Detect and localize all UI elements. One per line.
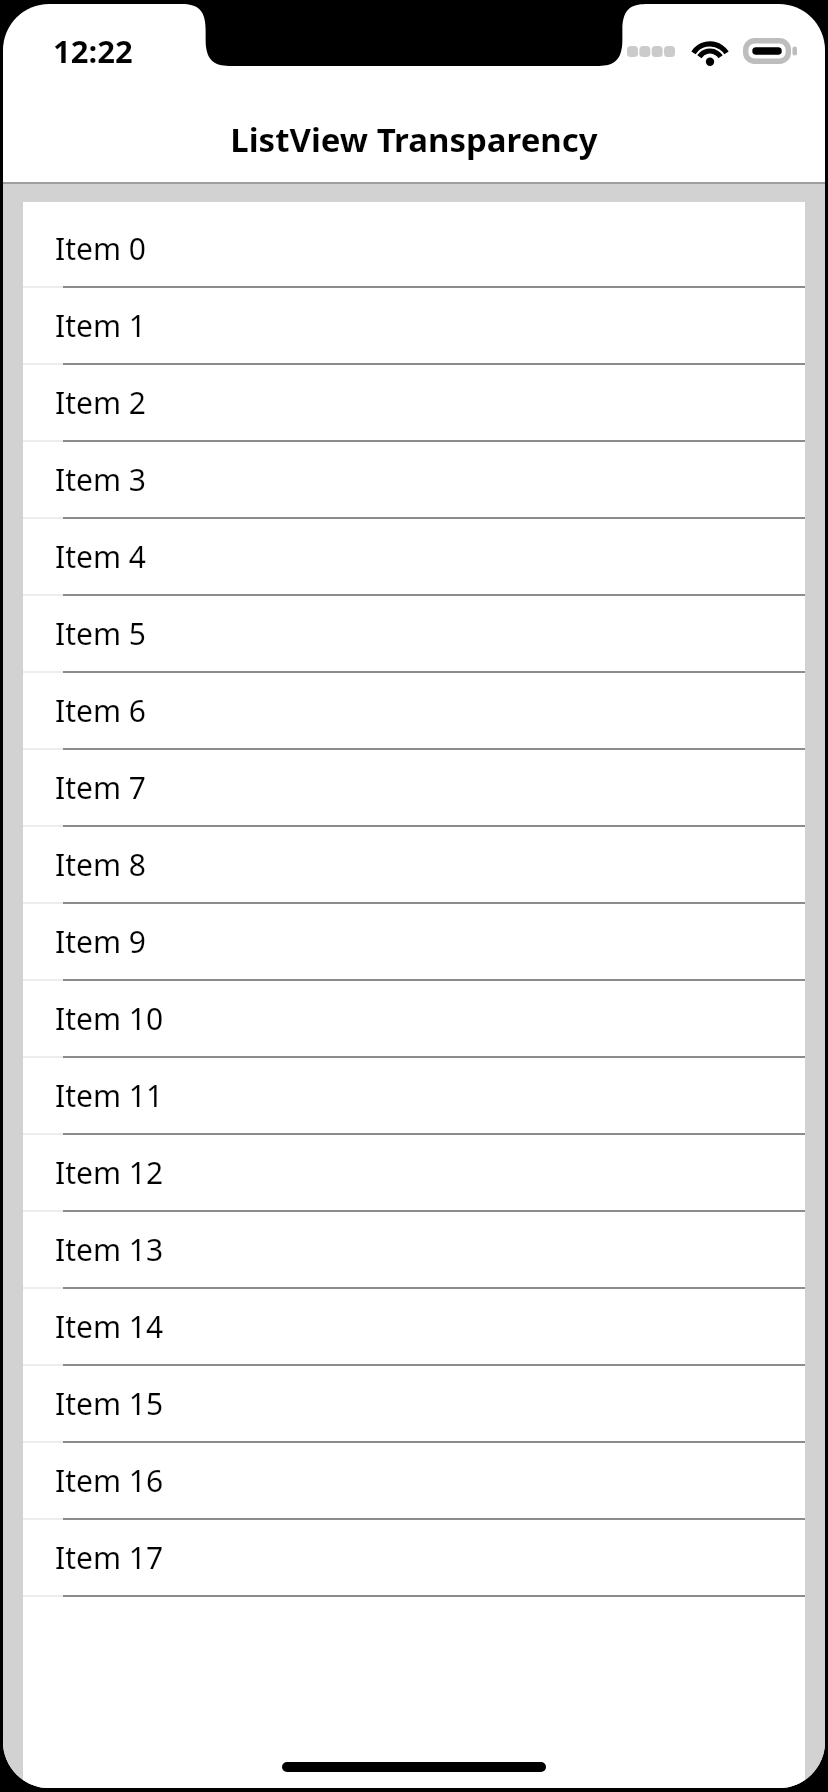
- other: Battery: [743, 38, 797, 64]
- other: Cellular signal: [627, 46, 675, 57]
- staticText: 12:22: [53, 30, 133, 72]
- button[interactable]: Item 4: [23, 519, 805, 596]
- button[interactable]: Item 10: [23, 981, 805, 1058]
- staticText: Item 7: [55, 767, 146, 808]
- button[interactable]: Item 16: [23, 1443, 805, 1520]
- button[interactable]: Item 3: [23, 442, 805, 519]
- staticText: ListView Transparency: [230, 117, 598, 162]
- button[interactable]: Item 0: [23, 202, 805, 288]
- staticText: Item 5: [55, 613, 146, 654]
- button[interactable]: Item 11: [23, 1058, 805, 1135]
- button[interactable]: Item 15: [23, 1366, 805, 1443]
- button[interactable]: Item 1: [23, 288, 805, 365]
- staticText: Item 6: [55, 690, 146, 731]
- button[interactable]: Item 6: [23, 673, 805, 750]
- button[interactable]: Item 5: [23, 596, 805, 673]
- staticText: Item 15: [55, 1383, 164, 1424]
- button[interactable]: Item 14: [23, 1289, 805, 1366]
- staticText: Item 12: [55, 1152, 164, 1193]
- staticText: Item 3: [55, 459, 146, 500]
- other: Wi-Fi: [689, 36, 731, 66]
- button[interactable]: Item 17: [23, 1520, 805, 1597]
- staticText: Item 1: [55, 305, 146, 346]
- staticText: Item 10: [55, 998, 164, 1039]
- button[interactable]: Item 9: [23, 904, 805, 981]
- button[interactable]: Item 2: [23, 365, 805, 442]
- staticText: Item 17: [55, 1537, 164, 1578]
- staticText: Item 0: [55, 228, 146, 269]
- staticText: Item 2: [55, 382, 146, 423]
- staticText: Item 9: [55, 921, 146, 962]
- button[interactable]: Item 8: [23, 827, 805, 904]
- staticText: Item 13: [55, 1229, 164, 1270]
- staticText: Item 4: [55, 536, 146, 577]
- staticText: Item 16: [55, 1460, 164, 1501]
- staticText: Item 14: [55, 1306, 164, 1347]
- staticText: Item 8: [55, 844, 146, 885]
- button[interactable]: Item 13: [23, 1212, 805, 1289]
- button[interactable]: Item 12: [23, 1135, 805, 1212]
- button[interactable]: Item 7: [23, 750, 805, 827]
- staticText: Item 11: [55, 1075, 164, 1116]
